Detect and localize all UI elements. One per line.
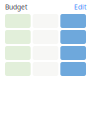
staticText: Edit [74,3,86,11]
staticText: Budget [5,3,27,11]
